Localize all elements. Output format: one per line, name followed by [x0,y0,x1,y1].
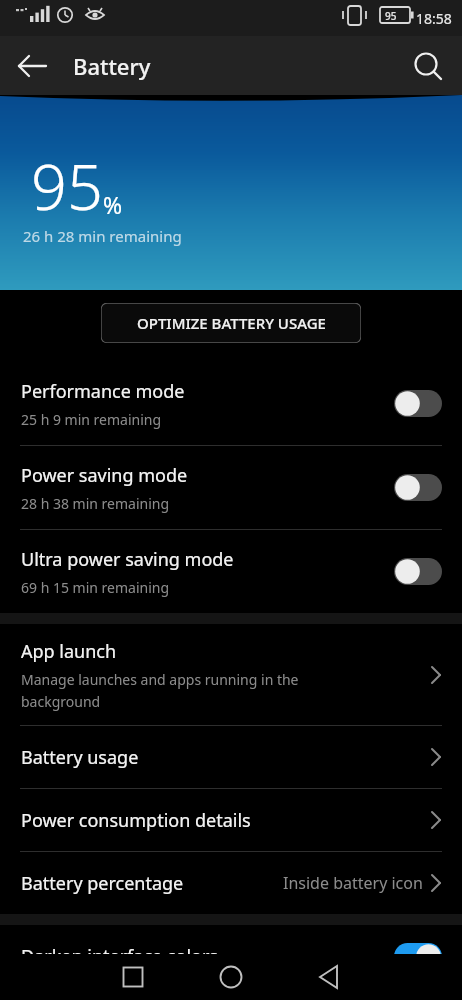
staticText: Manage launches and apps running in the … [21,670,299,711]
staticText: 25 h 9 min remaining [21,410,162,429]
button[interactable]: Recents [111,955,155,999]
button[interactable]: Back [10,44,54,88]
button[interactable]: App launch [0,624,462,725]
staticText: Inside battery icon [283,872,423,894]
button[interactable]: Battery usage [0,726,462,788]
staticText: 95 [31,143,103,229]
staticText: 69 h 15 min remaining [21,578,170,597]
staticText: Power saving mode [21,463,188,488]
button[interactable]: OPTIMIZE BATTERY USAGE [101,303,361,343]
button[interactable]: Power saving mode [0,446,462,529]
staticText: Battery percentage [21,871,184,896]
staticText: % [103,189,123,220]
staticText: 18:58 [416,9,452,28]
button[interactable]: Back [308,955,352,999]
staticText: 28 h 38 min remaining [21,494,170,513]
button[interactable]: Darken interface colors [0,925,462,987]
staticText: Battery [73,51,151,81]
staticText: 26 h 28 min remaining [23,226,182,246]
staticText: Battery usage [21,745,139,770]
button[interactable]: Search [406,44,450,88]
staticText: Power consumption details [21,808,251,833]
staticText: OPTIMIZE BATTERY USAGE [137,313,326,333]
staticText: Ultra power saving mode [21,547,234,572]
button[interactable]: Power consumption details [0,789,462,851]
staticText: Darken interface colors [21,944,218,969]
staticText: 95 [385,9,397,23]
button[interactable]: Home [209,955,253,999]
button[interactable]: Ultra power saving mode [0,530,462,613]
staticText: Performance mode [21,379,185,404]
staticText: App launch [21,639,117,664]
button[interactable]: Performance mode [0,362,462,445]
button[interactable]: Battery percentage [0,852,462,914]
